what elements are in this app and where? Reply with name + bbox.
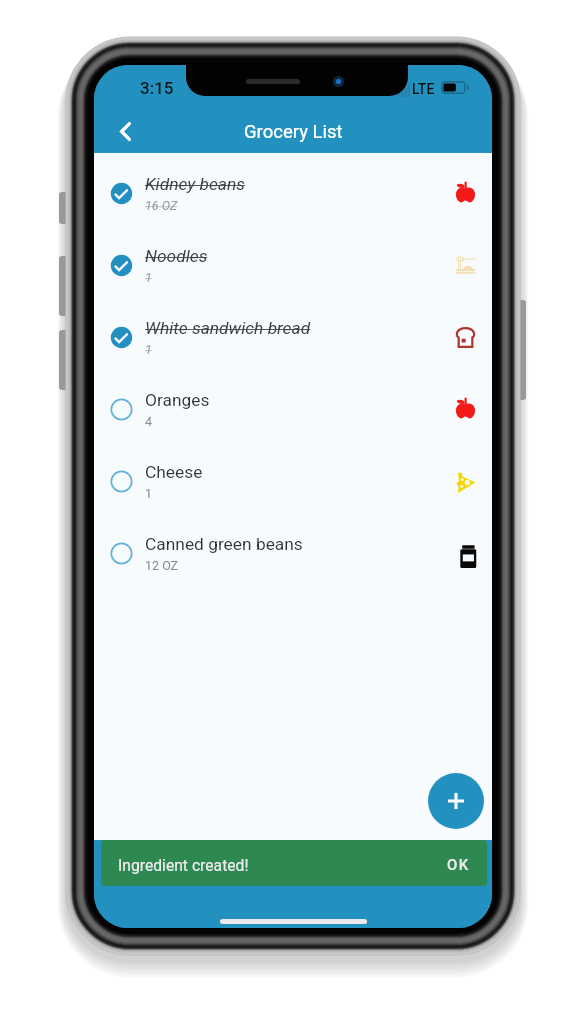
staticText: White sandwich bread — [145, 318, 311, 338]
staticText: OK — [447, 856, 470, 874]
staticText: Kidney beans — [145, 174, 245, 194]
staticText: 1 — [145, 342, 152, 357]
staticText: 4 — [145, 414, 153, 429]
button[interactable]: White sandwich bread — [94, 301, 492, 373]
staticText: 16 OZ — [145, 198, 178, 213]
staticText: LTE — [412, 81, 435, 97]
button[interactable]: Cheese — [94, 445, 492, 517]
staticText: Grocery List — [244, 121, 343, 143]
button[interactable]: Kidney beans — [94, 157, 492, 229]
staticText: Canned green beans — [145, 534, 303, 554]
button[interactable]: Canned green beans — [94, 517, 492, 589]
button[interactable]: Noodles — [94, 229, 492, 301]
button[interactable]: Back — [103, 110, 147, 153]
staticText: Cheese — [145, 462, 203, 482]
button[interactable]: OK — [430, 844, 487, 882]
staticText: 3:15 — [140, 78, 174, 98]
staticText: 1 — [145, 270, 152, 285]
staticText: Ingredient created! — [118, 856, 249, 874]
button[interactable]: Oranges — [94, 373, 492, 445]
staticText: Noodles — [145, 246, 208, 266]
staticText: Oranges — [145, 390, 210, 410]
staticText: 1 — [145, 486, 153, 501]
button[interactable]: Add ingredient — [428, 773, 484, 829]
staticText: 12 OZ — [145, 558, 179, 573]
